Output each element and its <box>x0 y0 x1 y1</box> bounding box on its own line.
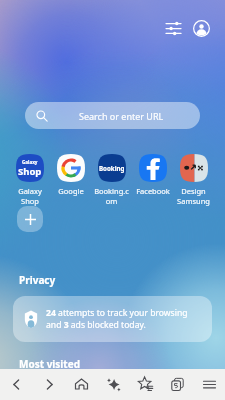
button[interactable]: 24 attempts to track your browsing <box>13 296 212 342</box>
button[interactable]: Back <box>0 369 33 400</box>
staticText: Privacy <box>19 273 56 287</box>
staticText: Booking <box>99 164 125 172</box>
staticText: and 3 ads blocked today. <box>46 319 146 331</box>
button[interactable]: Account <box>188 15 214 41</box>
button[interactable]: Tabs <box>161 369 193 400</box>
staticText: Shop <box>18 165 42 178</box>
staticText: 24 attempts to track your browsing <box>46 307 188 319</box>
button[interactable]: Booking <box>91 154 132 206</box>
staticText: Galaxy Shop <box>18 186 42 206</box>
button[interactable]: Browsing assistant <box>97 369 129 400</box>
staticText: Most visited <box>19 357 80 371</box>
staticText: Galaxy <box>22 159 38 165</box>
staticText: Booking.c om <box>94 186 129 206</box>
button[interactable]: Menu <box>193 369 225 400</box>
button[interactable]: Forward <box>33 369 65 400</box>
button[interactable]: Home <box>65 369 97 400</box>
button[interactable]: Google <box>50 154 91 196</box>
staticText: Google <box>58 186 84 196</box>
button[interactable]: Settings <box>160 15 186 41</box>
staticText: Facebook <box>136 186 170 196</box>
staticText: Design Samsung <box>177 186 210 206</box>
button[interactable]: Add shortcut <box>17 206 43 232</box>
button[interactable]: Search or enter URL <box>25 102 200 129</box>
button[interactable]: Design Samsung <box>173 154 214 206</box>
button[interactable]: Galaxy <box>9 154 50 206</box>
button[interactable]: Facebook <box>132 154 173 196</box>
staticText: Search or enter URL <box>79 110 164 122</box>
button[interactable]: Bookmarks <box>129 369 161 400</box>
